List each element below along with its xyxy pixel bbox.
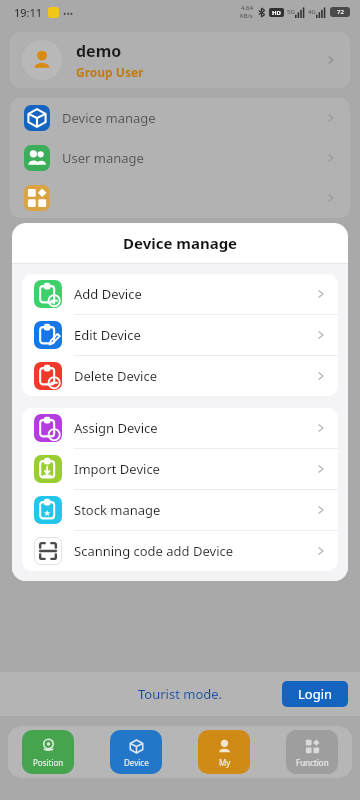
staticText: 5G <box>287 8 295 16</box>
staticText: Scanning code add Device <box>74 542 314 560</box>
button[interactable]: Login <box>282 681 348 707</box>
staticText: 4G <box>308 8 316 16</box>
button[interactable]: Add Device <box>22 274 338 315</box>
staticText: Delete Device <box>74 367 314 385</box>
button[interactable]: Position <box>22 730 74 774</box>
button[interactable]: Scanning code add Device <box>22 531 338 571</box>
button[interactable]: demo <box>22 32 338 88</box>
staticText: ••• <box>63 7 74 19</box>
button[interactable]: Edit Device <box>22 315 338 356</box>
staticText: My <box>219 757 231 768</box>
staticText: Edit Device <box>74 326 314 344</box>
staticText: 19:11 <box>14 5 43 20</box>
staticText: Device manage <box>123 233 238 253</box>
staticText: Device manage <box>62 109 324 127</box>
staticText: 72 <box>337 8 344 16</box>
staticText: Tourist mode. <box>138 685 223 703</box>
staticText: Device <box>124 757 149 768</box>
button[interactable]: Assign Device <box>22 408 338 449</box>
staticText: Assign Device <box>74 419 314 437</box>
button[interactable]: Device <box>110 730 162 774</box>
staticText: User manage <box>62 149 324 167</box>
button[interactable]: Import Device <box>22 449 338 490</box>
button[interactable]: Device manage <box>24 98 338 138</box>
staticText: Group User <box>76 64 144 80</box>
button[interactable] <box>24 178 338 218</box>
staticText: Import Device <box>74 460 314 478</box>
staticText: Login <box>298 685 333 703</box>
button[interactable]: My <box>198 730 250 774</box>
staticText: KB/s <box>240 12 253 20</box>
staticText: Add Device <box>74 285 314 303</box>
staticText: Function <box>296 757 329 768</box>
button[interactable]: Delete Device <box>22 356 338 396</box>
button[interactable]: Stock manage <box>22 490 338 531</box>
staticText: 4.64 <box>241 4 253 12</box>
button[interactable]: User manage <box>24 138 338 178</box>
staticText: HD <box>272 9 281 17</box>
button[interactable]: Function <box>286 730 338 774</box>
staticText: Position <box>33 757 64 768</box>
staticText: Stock manage <box>74 501 314 519</box>
staticText: demo <box>76 40 122 62</box>
